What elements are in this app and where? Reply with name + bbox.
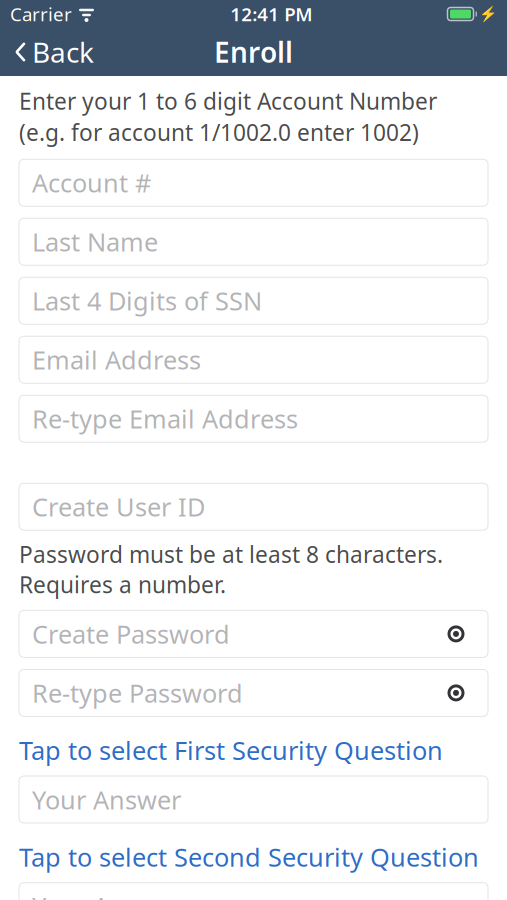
button[interactable]: Create Password [19, 610, 488, 657]
staticText: (e.g. for account 1/1002.0 enter 1002) [19, 117, 419, 147]
staticText: Enter your 1 to 6 digit Account Number [19, 86, 437, 116]
staticText: Email Address [32, 343, 201, 376]
button[interactable]: Last Name [19, 218, 488, 265]
staticText: Carrier [10, 2, 72, 26]
button[interactable]: Create User ID [19, 483, 488, 530]
staticText: Your Answer [32, 783, 181, 816]
button[interactable]: Back [0, 28, 108, 76]
button[interactable]: Show password [437, 670, 475, 716]
button[interactable]: Tap to select First Security Question [19, 716, 488, 776]
staticText: Account # [32, 166, 151, 199]
staticText: 12:41 PM [230, 2, 312, 26]
staticText: Your Answer [32, 889, 181, 900]
staticText: Back [32, 33, 94, 71]
staticText: Create User ID [32, 490, 205, 523]
button[interactable]: Re-type Password [19, 669, 488, 716]
button[interactable]: Email Address [19, 336, 488, 383]
staticText: Last Name [32, 225, 158, 258]
button[interactable]: Account # [19, 159, 488, 206]
button[interactable]: Your Answer [19, 776, 488, 823]
staticText: Create Password [32, 617, 230, 651]
button[interactable]: Tap to select Second Security Question [19, 823, 488, 883]
staticText: Tap to select Second Security Question [19, 840, 479, 874]
staticText: Re-type Email Address [32, 402, 298, 435]
staticText: ⚡ [479, 6, 497, 22]
staticText: Last 4 Digits of SSN [32, 284, 262, 317]
staticText: Tap to select First Security Question [19, 733, 443, 767]
button[interactable]: Last 4 Digits of SSN [19, 277, 488, 324]
button[interactable]: Show password [437, 611, 475, 657]
button[interactable]: Re-type Email Address [19, 395, 488, 442]
button[interactable]: Your Answer [19, 883, 488, 900]
staticText: Enroll [214, 33, 293, 71]
staticText: Password must be at least 8 characters. … [19, 539, 443, 599]
staticText: Re-type Password [32, 676, 243, 710]
